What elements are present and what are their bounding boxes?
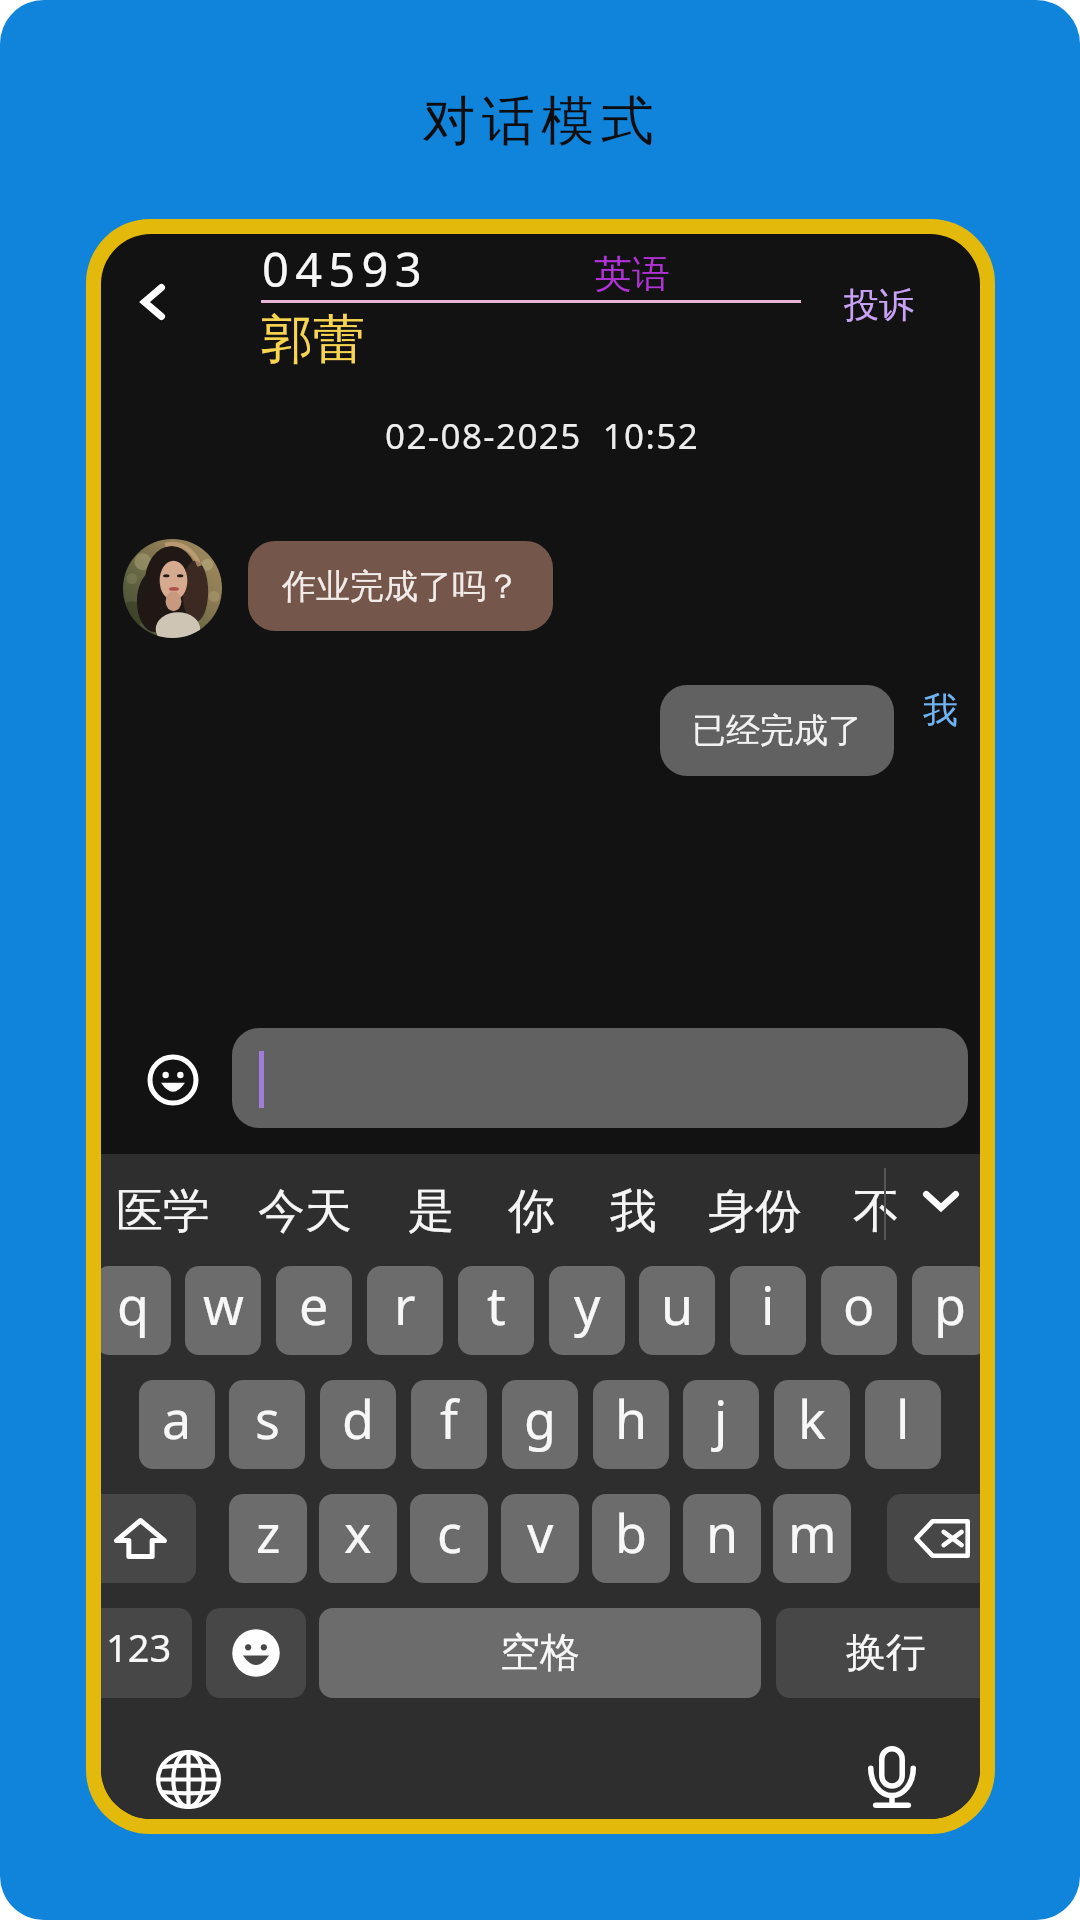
button[interactable]: 作业完成了吗？ (248, 541, 553, 631)
staticText: f (440, 1383, 458, 1454)
staticText: 对话模式 (419, 88, 657, 155)
button[interactable]: Voice input (856, 1734, 928, 1819)
button[interactable]: c (410, 1494, 488, 1583)
staticText: 我 (923, 688, 958, 732)
staticText: x (344, 1497, 372, 1568)
button[interactable]: w (185, 1266, 261, 1355)
button[interactable]: 今天 (258, 1182, 352, 1241)
staticText: 我 (610, 1182, 657, 1241)
button[interactable]: 投诉 (844, 283, 914, 327)
button[interactable]: Shift (101, 1494, 196, 1583)
staticText: 郭蕾 (261, 307, 365, 373)
staticText: o (843, 1269, 875, 1340)
staticText: 医学 (116, 1182, 210, 1241)
button[interactable]: o (821, 1266, 897, 1355)
button[interactable]: r (367, 1266, 443, 1355)
staticText: y (574, 1269, 601, 1340)
button[interactable]: q (101, 1266, 171, 1355)
button[interactable]: n (683, 1494, 761, 1583)
button[interactable]: g (502, 1380, 578, 1469)
button[interactable]: z (229, 1494, 307, 1583)
staticText: c (437, 1497, 462, 1568)
staticText: q (117, 1269, 149, 1340)
button[interactable]: 我 (610, 1182, 657, 1241)
staticText: 02-08-2025 10:52 (385, 412, 700, 460)
staticText: 空格 (500, 1627, 580, 1677)
staticText: u (661, 1269, 694, 1340)
button[interactable]: Backspace (887, 1494, 980, 1583)
staticText: d (342, 1383, 374, 1454)
staticText: s (255, 1383, 280, 1454)
staticText: 作业完成了吗？ (282, 565, 520, 608)
button[interactable]: d (320, 1380, 396, 1469)
staticText: a (162, 1383, 192, 1454)
button[interactable]: Emoji keyboard (206, 1608, 306, 1698)
staticText: h (615, 1383, 648, 1454)
button[interactable]: i (730, 1266, 806, 1355)
staticText: b (615, 1497, 647, 1568)
button[interactable]: f (411, 1380, 487, 1469)
staticText: v (527, 1497, 554, 1568)
staticText: 今天 (258, 1182, 352, 1241)
staticText: g (524, 1383, 556, 1454)
staticText: e (299, 1269, 329, 1340)
staticText: i (761, 1269, 775, 1340)
button[interactable]: s (229, 1380, 305, 1469)
button[interactable]: 123 (101, 1608, 192, 1698)
button[interactable]: y (549, 1266, 625, 1355)
staticText: 04593 (262, 237, 428, 301)
button[interactable]: 是 (408, 1182, 455, 1241)
staticText: 你 (508, 1182, 555, 1241)
staticText: 是 (408, 1182, 455, 1241)
button[interactable]: a (139, 1380, 215, 1469)
button[interactable]: j (683, 1380, 759, 1469)
staticText: t (487, 1269, 506, 1340)
button[interactable]: 已经完成了 (660, 685, 894, 776)
staticText: p (934, 1269, 966, 1340)
button[interactable]: Back (119, 270, 187, 334)
button[interactable]: u (639, 1266, 715, 1355)
button[interactable]: h (593, 1380, 669, 1469)
staticText: 123 (106, 1621, 172, 1673)
staticText: l (896, 1383, 910, 1454)
button[interactable]: m (773, 1494, 851, 1583)
staticText: 换行 (846, 1627, 926, 1677)
button[interactable]: 你 (508, 1182, 555, 1241)
button[interactable] (232, 1028, 968, 1128)
staticText: m (788, 1497, 837, 1568)
button[interactable]: Emoji (147, 1054, 199, 1106)
button[interactable]: b (592, 1494, 670, 1583)
button[interactable]: t (458, 1266, 534, 1355)
staticText: 英语 (594, 250, 670, 298)
button[interactable]: 换行 (776, 1608, 980, 1698)
button[interactable]: e (276, 1266, 352, 1355)
staticText: n (706, 1497, 739, 1568)
button[interactable]: p (912, 1266, 980, 1355)
button[interactable]: Hide suggestions (904, 1166, 978, 1236)
button[interactable]: 身份 (708, 1182, 802, 1241)
button[interactable]: Change language (147, 1737, 229, 1819)
staticText: z (256, 1497, 281, 1568)
button[interactable]: 不 (853, 1182, 900, 1241)
button[interactable]: 医学 (116, 1182, 210, 1241)
staticText: j (714, 1383, 728, 1454)
staticText: k (798, 1383, 826, 1454)
button[interactable]: 空格 (319, 1608, 761, 1698)
staticText: 不 (853, 1182, 900, 1241)
staticText: w (203, 1269, 244, 1340)
staticText: 投诉 (844, 283, 914, 327)
staticText: 已经完成了 (692, 709, 862, 752)
staticText: 身份 (708, 1182, 802, 1241)
button[interactable]: k (774, 1380, 850, 1469)
button[interactable]: x (319, 1494, 397, 1583)
staticText: r (394, 1269, 416, 1340)
button[interactable]: l (865, 1380, 941, 1469)
button[interactable]: v (501, 1494, 579, 1583)
button[interactable]: Avatar (123, 539, 222, 638)
